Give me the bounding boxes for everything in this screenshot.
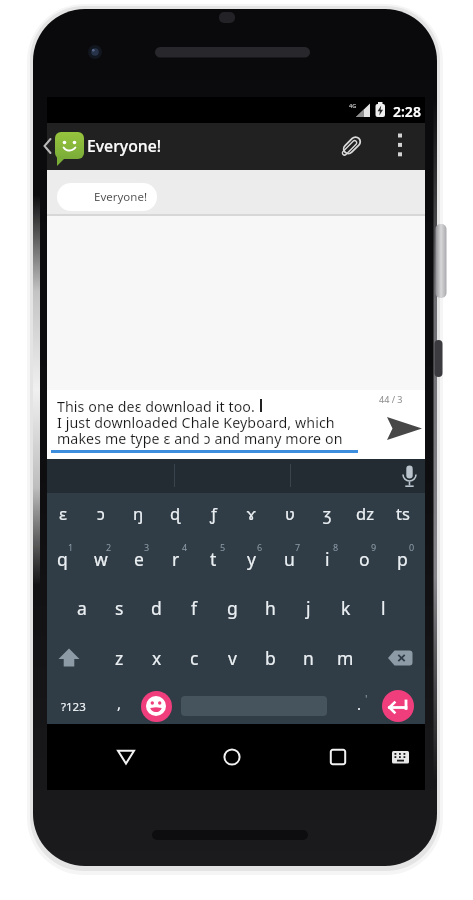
button[interactable] <box>336 129 368 161</box>
staticText: x <box>152 646 162 670</box>
staticText: This one deε download it too. <box>57 397 255 416</box>
button[interactable]: ts <box>384 492 421 534</box>
staticText: ɔ <box>97 502 105 524</box>
button[interactable]: d <box>138 585 175 631</box>
staticText: t <box>210 547 217 571</box>
button[interactable]: ŋ <box>120 492 157 534</box>
button[interactable] <box>318 737 358 777</box>
button[interactable]: v <box>214 635 251 681</box>
staticText: w <box>94 547 108 571</box>
staticText: u <box>284 547 295 571</box>
staticText: f <box>191 596 198 620</box>
staticText: e <box>134 547 144 571</box>
staticText: ts <box>396 502 410 524</box>
staticText: z <box>115 646 124 670</box>
staticText: 7 <box>295 541 301 553</box>
staticText: 2 <box>106 541 112 553</box>
staticText: r <box>172 547 180 571</box>
button[interactable] <box>212 737 252 777</box>
button[interactable] <box>390 129 410 161</box>
button[interactable] <box>47 459 425 493</box>
staticText: v <box>228 646 237 670</box>
staticText: ɛ <box>59 502 67 524</box>
button[interactable] <box>141 691 172 722</box>
staticText: 9 <box>371 541 377 553</box>
staticText: 4 <box>182 541 188 553</box>
button[interactable] <box>50 636 88 680</box>
button[interactable] <box>47 390 425 459</box>
button[interactable]: ɛ <box>44 492 81 534</box>
staticText: n <box>303 646 314 670</box>
staticText: j <box>306 596 311 620</box>
staticText: ?123 <box>61 699 86 715</box>
staticText: I just downloaded Chale Keyboard, which <box>57 413 335 432</box>
button[interactable]: t <box>195 536 232 582</box>
button[interactable]: p <box>384 536 421 582</box>
button[interactable] <box>382 690 414 722</box>
staticText: a <box>77 596 87 620</box>
button[interactable]: f <box>176 585 213 631</box>
staticText: m <box>337 646 354 670</box>
staticText: ƒ <box>210 502 217 524</box>
button[interactable] <box>106 737 146 777</box>
button[interactable]: j <box>290 585 327 631</box>
button[interactable]: z <box>101 635 138 681</box>
button[interactable]: e <box>120 536 157 582</box>
button[interactable]: , <box>104 686 134 720</box>
button[interactable]: b <box>252 635 289 681</box>
staticText: d <box>151 596 162 620</box>
button[interactable]: q <box>44 536 81 582</box>
button[interactable]: x <box>138 635 175 681</box>
staticText: dz <box>356 502 374 524</box>
button[interactable]: a <box>63 585 100 631</box>
staticText: 8 <box>333 541 339 553</box>
staticText: ʒ <box>323 502 332 524</box>
button[interactable]: . <box>347 687 371 721</box>
button[interactable]: u <box>271 536 308 582</box>
staticText: ʋ <box>285 502 295 524</box>
button[interactable]: s <box>101 585 138 631</box>
button[interactable]: ƒ <box>195 492 232 534</box>
button[interactable]: o <box>346 536 383 582</box>
button[interactable]: i <box>309 536 346 582</box>
button[interactable] <box>382 636 422 680</box>
staticText: 1 <box>68 541 74 553</box>
button[interactable]: y <box>233 536 270 582</box>
staticText: 6 <box>257 541 263 553</box>
staticText: , <box>117 693 122 713</box>
button[interactable]: k <box>327 585 364 631</box>
button[interactable]: Everyone! <box>57 183 157 211</box>
button[interactable]: ɔ <box>82 492 119 534</box>
button[interactable]: l <box>365 585 402 631</box>
staticText: makes me type ɛ and ɔ and many more on <box>57 429 343 448</box>
staticText: 5 <box>220 541 226 553</box>
button[interactable]: dz <box>346 492 383 534</box>
staticText: ' <box>365 691 368 705</box>
staticText: . <box>357 694 362 714</box>
button[interactable] <box>55 132 84 159</box>
button[interactable]: w <box>82 536 119 582</box>
staticText: 3 <box>144 541 150 553</box>
button[interactable]: ?123 <box>51 690 95 724</box>
button[interactable]: g <box>214 585 251 631</box>
staticText: q <box>57 547 68 571</box>
button[interactable]: h <box>252 585 289 631</box>
button[interactable]: r <box>157 536 194 582</box>
button[interactable] <box>397 462 423 490</box>
button[interactable]: ɖ <box>157 492 194 534</box>
button[interactable]: ʒ <box>309 492 346 534</box>
staticText: ɖ <box>170 502 181 524</box>
button[interactable]: n <box>290 635 327 681</box>
button[interactable]: ʋ <box>271 492 308 534</box>
staticText: y <box>247 547 256 571</box>
staticText: 4G <box>349 102 357 109</box>
button[interactable] <box>383 412 425 446</box>
staticText: k <box>341 596 351 620</box>
button[interactable] <box>386 741 416 773</box>
button[interactable]: c <box>176 635 213 681</box>
staticText: l <box>381 596 386 620</box>
button[interactable] <box>42 130 54 162</box>
button[interactable]: ɤ <box>233 492 270 534</box>
button[interactable]: m <box>327 635 364 681</box>
